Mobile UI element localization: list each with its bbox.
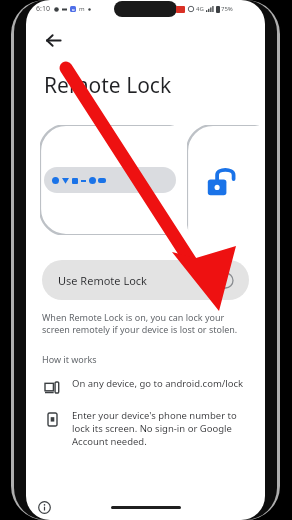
staticText: 4G [196, 5, 204, 13]
staticText: Enter your device's phone number to lock… [72, 409, 249, 448]
button[interactable]: Use Remote Lock [42, 260, 249, 300]
staticText: u [72, 7, 75, 12]
staticText: m [79, 5, 85, 13]
staticText: Use Remote Lock [58, 273, 147, 288]
staticText: On any device, go to android.com/lock [72, 377, 244, 390]
staticText: 75% [221, 5, 233, 13]
button[interactable]: Back [36, 23, 70, 57]
staticText: How it works [42, 353, 97, 365]
staticText: 6:10 [36, 4, 50, 14]
staticText: Remote Lock [44, 71, 172, 100]
staticText: When Remote Lock is on, you can lock you… [42, 311, 247, 336]
button[interactable]: Info [34, 497, 54, 517]
